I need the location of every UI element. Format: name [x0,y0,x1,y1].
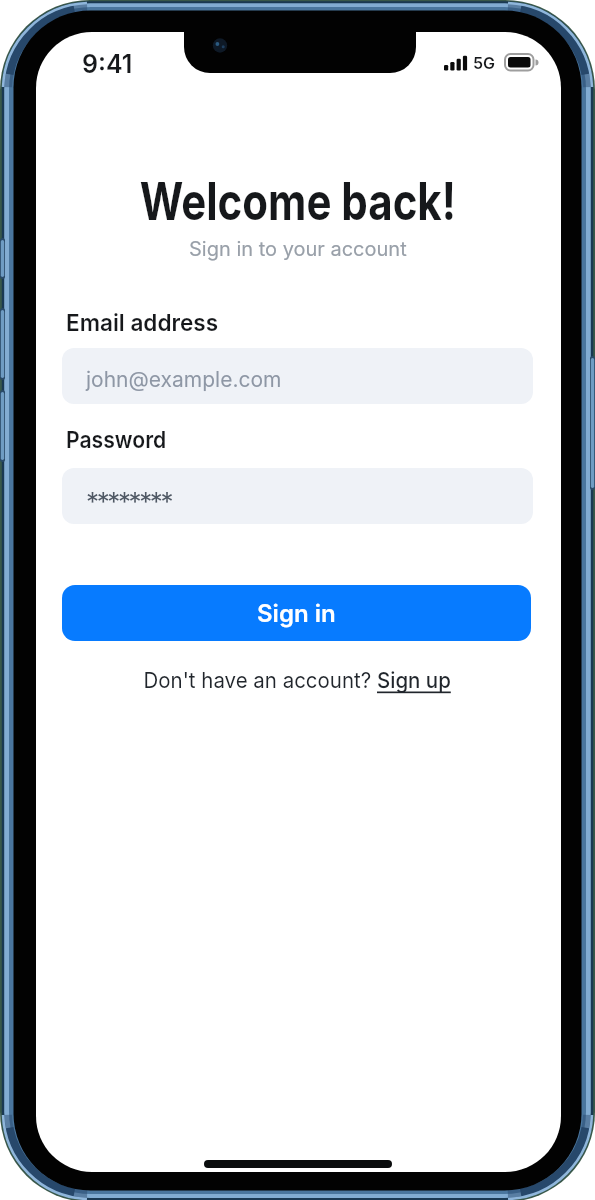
button[interactable]: ******** [62,468,533,524]
button[interactable]: Sign in [62,585,531,641]
button[interactable]: john@example.com [62,348,533,404]
staticText: Welcome back! [140,170,456,233]
staticText: 5G [473,53,496,72]
button[interactable]: Sign up [377,667,451,694]
staticText: 9:41 [82,49,133,79]
staticText: john@example.com [86,367,282,392]
staticText: Password [66,425,167,453]
staticText: Sign in to your account [189,237,407,261]
staticText: Don't have an account? [144,667,377,694]
staticText: Email address [66,308,219,336]
staticText: Sign in [257,599,336,628]
staticText: ******** [86,486,172,517]
